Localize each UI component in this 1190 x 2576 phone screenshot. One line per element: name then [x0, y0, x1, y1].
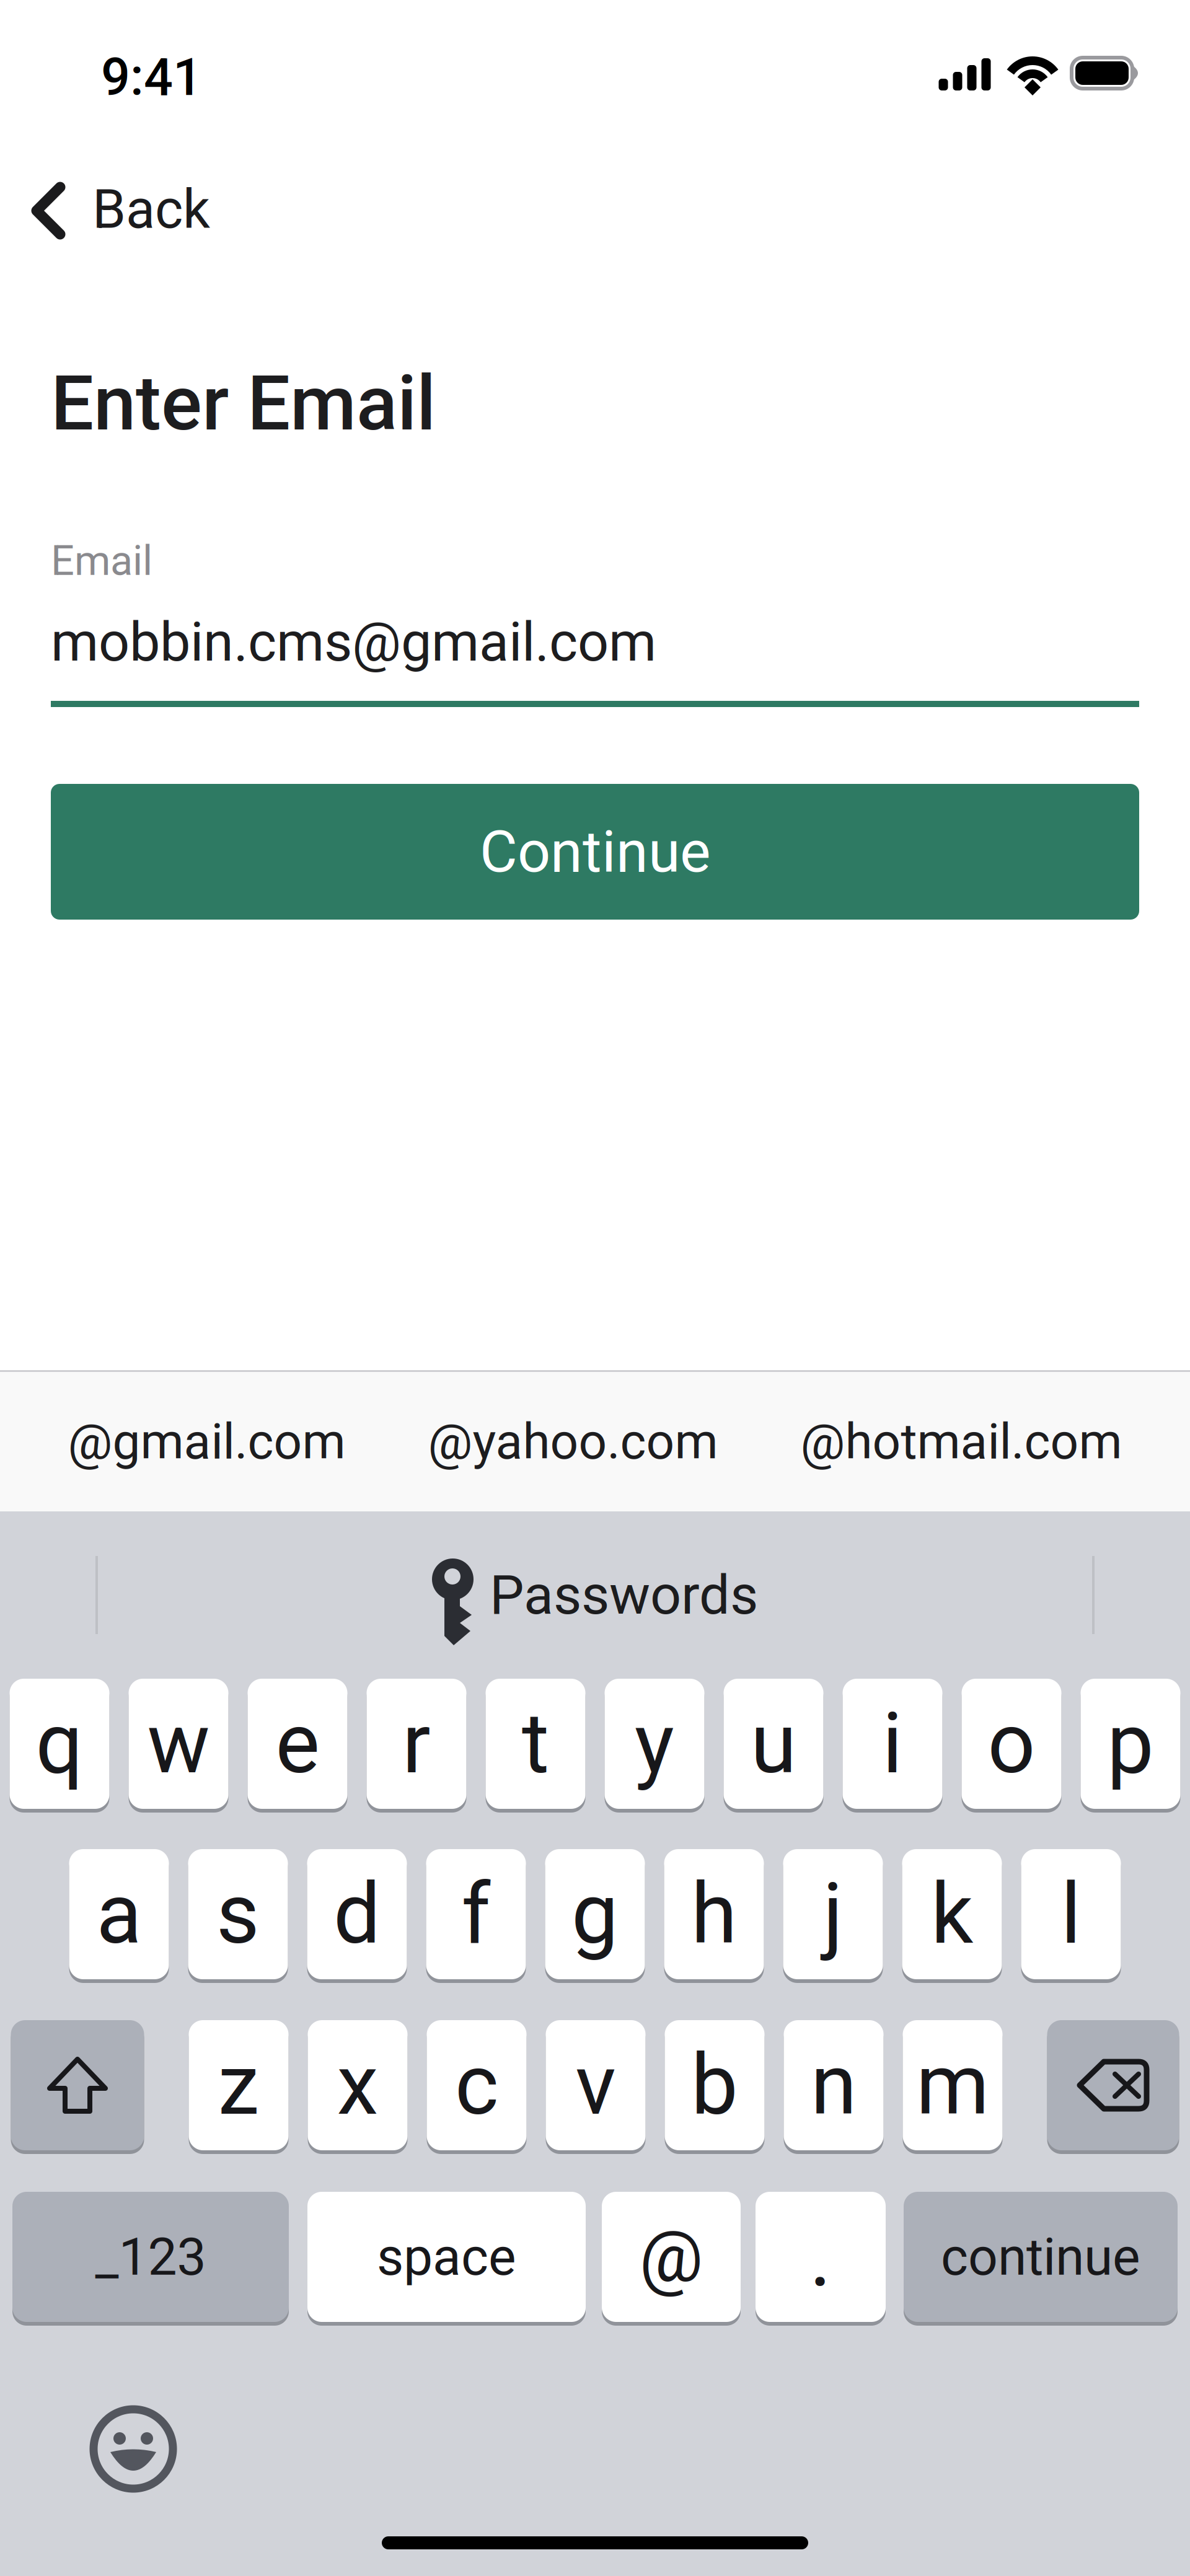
staticText: mobbin.cms@gmail.com: [51, 610, 656, 674]
staticText: @: [639, 2215, 703, 2299]
staticText: c: [455, 2036, 498, 2134]
button[interactable]: k: [902, 1849, 1002, 1979]
staticText: v: [575, 2036, 616, 2134]
staticText: o: [988, 1695, 1035, 1793]
staticText: f: [461, 1865, 491, 1963]
button[interactable]: Emoji keyboard: [87, 2402, 180, 2495]
button[interactable]: r: [367, 1679, 466, 1809]
staticText: 9:41: [101, 47, 202, 108]
staticText: y: [635, 1695, 674, 1793]
staticText: b: [691, 2036, 738, 2134]
button[interactable]: @: [602, 2192, 741, 2322]
staticText: s: [216, 1865, 260, 1963]
button[interactable]: v: [546, 2020, 646, 2150]
button[interactable]: y: [605, 1679, 704, 1809]
button[interactable]: space: [307, 2192, 586, 2322]
button[interactable]: e: [248, 1679, 347, 1809]
staticText: .: [809, 2208, 832, 2306]
staticText: t: [522, 1695, 549, 1793]
staticText: @gmail.com: [68, 1413, 346, 1471]
staticText: continue: [941, 2226, 1140, 2287]
button[interactable]: Continue: [51, 784, 1139, 920]
staticText: d: [333, 1865, 381, 1963]
button[interactable]: .: [756, 2192, 886, 2322]
button[interactable]: @yahoo.com: [428, 1372, 718, 1511]
button[interactable]: h: [664, 1849, 764, 1979]
staticText: m: [916, 2036, 989, 2134]
staticText: Enter Email: [51, 359, 436, 448]
staticText: u: [751, 1695, 796, 1793]
button[interactable]: t: [486, 1679, 585, 1809]
staticText: Passwords: [490, 1563, 758, 1627]
button[interactable]: w: [129, 1679, 228, 1809]
staticText: p: [1107, 1695, 1154, 1793]
button[interactable]: Shift: [11, 2020, 144, 2150]
button[interactable]: Delete: [1047, 2020, 1179, 2150]
button[interactable]: g: [545, 1849, 645, 1979]
staticText: k: [931, 1865, 973, 1963]
staticText: i: [882, 1695, 903, 1793]
staticText: g: [571, 1865, 619, 1963]
button[interactable]: b: [665, 2020, 765, 2150]
button[interactable]: m: [903, 2020, 1003, 2150]
staticText: @yahoo.com: [428, 1413, 718, 1471]
staticText: e: [275, 1695, 320, 1793]
staticText: Continue: [480, 818, 710, 886]
button[interactable]: u: [724, 1679, 823, 1809]
button[interactable]: c: [427, 2020, 527, 2150]
staticText: Back: [92, 178, 210, 241]
staticText: z: [218, 2036, 259, 2134]
staticText: @hotmail.com: [800, 1413, 1122, 1471]
button[interactable]: l: [1021, 1849, 1121, 1979]
button[interactable]: n: [784, 2020, 884, 2150]
staticText: a: [96, 1865, 142, 1963]
button[interactable]: @hotmail.com: [800, 1372, 1122, 1511]
staticText: Email: [51, 537, 152, 585]
button[interactable]: i: [843, 1679, 942, 1809]
staticText: r: [402, 1695, 431, 1793]
staticText: n: [811, 2036, 857, 2134]
button[interactable]: z: [189, 2020, 289, 2150]
staticText: l: [1061, 1865, 1081, 1963]
button[interactable]: o: [962, 1679, 1061, 1809]
button[interactable]: Passwords: [407, 1544, 783, 1646]
staticText: x: [337, 2036, 378, 2134]
button[interactable]: _123: [12, 2192, 289, 2322]
button[interactable]: s: [188, 1849, 288, 1979]
button[interactable]: a: [69, 1849, 169, 1979]
button[interactable]: p: [1081, 1679, 1180, 1809]
button[interactable]: Back: [0, 164, 237, 255]
button[interactable]: @gmail.com: [68, 1372, 346, 1511]
staticText: _123: [95, 2226, 206, 2287]
staticText: q: [36, 1695, 83, 1793]
button[interactable]: q: [10, 1679, 109, 1809]
button[interactable]: x: [308, 2020, 408, 2150]
staticText: h: [691, 1865, 737, 1963]
staticText: space: [377, 2226, 516, 2287]
staticText: j: [823, 1865, 843, 1963]
staticText: w: [147, 1695, 210, 1793]
button[interactable]: d: [307, 1849, 407, 1979]
button[interactable]: f: [426, 1849, 526, 1979]
button[interactable]: continue: [904, 2192, 1178, 2322]
button[interactable]: j: [783, 1849, 883, 1979]
